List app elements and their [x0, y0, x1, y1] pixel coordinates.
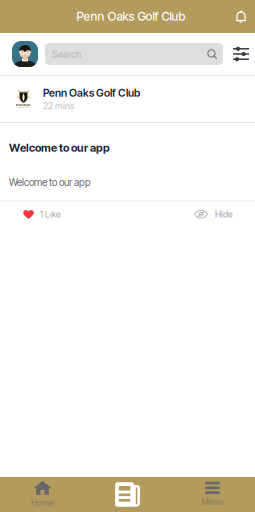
staticText: Hide: [215, 209, 233, 220]
staticText: Penn Oaks Golf Club: [43, 86, 140, 99]
staticText: Penn Oaks Golf Club: [76, 9, 185, 24]
button[interactable]: 1 Like: [14, 201, 70, 227]
button[interactable]: Home: [0, 477, 85, 512]
staticText: Welcome to our app: [9, 176, 91, 188]
button[interactable]: Hide: [185, 201, 242, 227]
button[interactable]: Filter: [232, 43, 250, 65]
button[interactable]: Menu: [170, 477, 255, 512]
button[interactable]: Profile: [12, 41, 38, 67]
staticText: Welcome to our app: [9, 141, 110, 154]
staticText: 1 Like: [40, 209, 61, 220]
staticText: Menu: [201, 497, 223, 507]
staticText: 22 mins: [43, 100, 74, 112]
button[interactable]: Notifications: [228, 0, 254, 33]
button[interactable]: News: [85, 477, 170, 512]
staticText: Search: [52, 48, 81, 60]
staticText: Home: [31, 498, 54, 508]
